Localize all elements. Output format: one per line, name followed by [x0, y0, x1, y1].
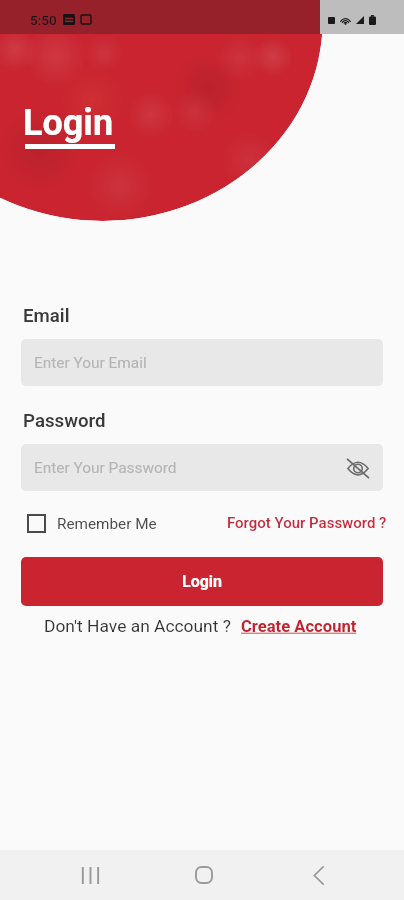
staticText: Email	[23, 305, 70, 327]
button[interactable]: Home	[170, 850, 238, 900]
staticText: Remember Me	[57, 515, 157, 533]
button[interactable]: Enter Your Password	[21, 444, 383, 491]
staticText: 5:50	[30, 12, 57, 28]
staticText: Don't Have an Account ?	[44, 616, 231, 636]
staticText: Enter Your Email	[34, 354, 147, 372]
button[interactable]: Show password	[343, 453, 373, 483]
staticText: Enter Your Password	[34, 459, 177, 477]
staticText: Login	[182, 572, 223, 591]
staticText: Password	[23, 410, 106, 432]
button[interactable]: Remember Me	[27, 514, 157, 533]
button[interactable]: Back	[284, 850, 352, 900]
button[interactable]: Forgot Your Password ?	[227, 514, 387, 532]
staticText: Login	[23, 102, 114, 144]
button[interactable]: Recent apps	[55, 850, 123, 900]
button[interactable]: Login	[21, 557, 383, 606]
button[interactable]: Enter Your Email	[21, 339, 383, 386]
button[interactable]: Create Account	[241, 617, 357, 636]
